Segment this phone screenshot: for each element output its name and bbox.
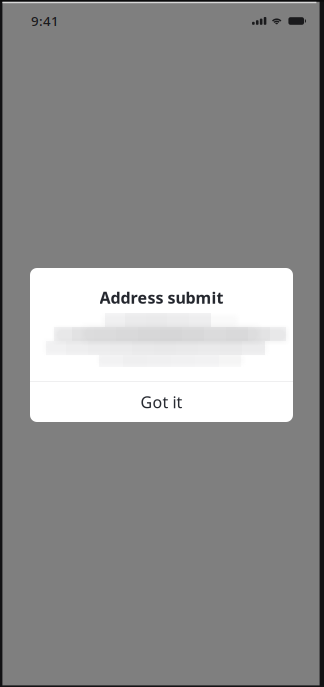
staticText: 9:41	[31, 12, 59, 30]
staticText: Address submit	[99, 287, 223, 308]
staticText: Got it	[140, 391, 182, 413]
button[interactable]: Got it	[30, 382, 293, 422]
